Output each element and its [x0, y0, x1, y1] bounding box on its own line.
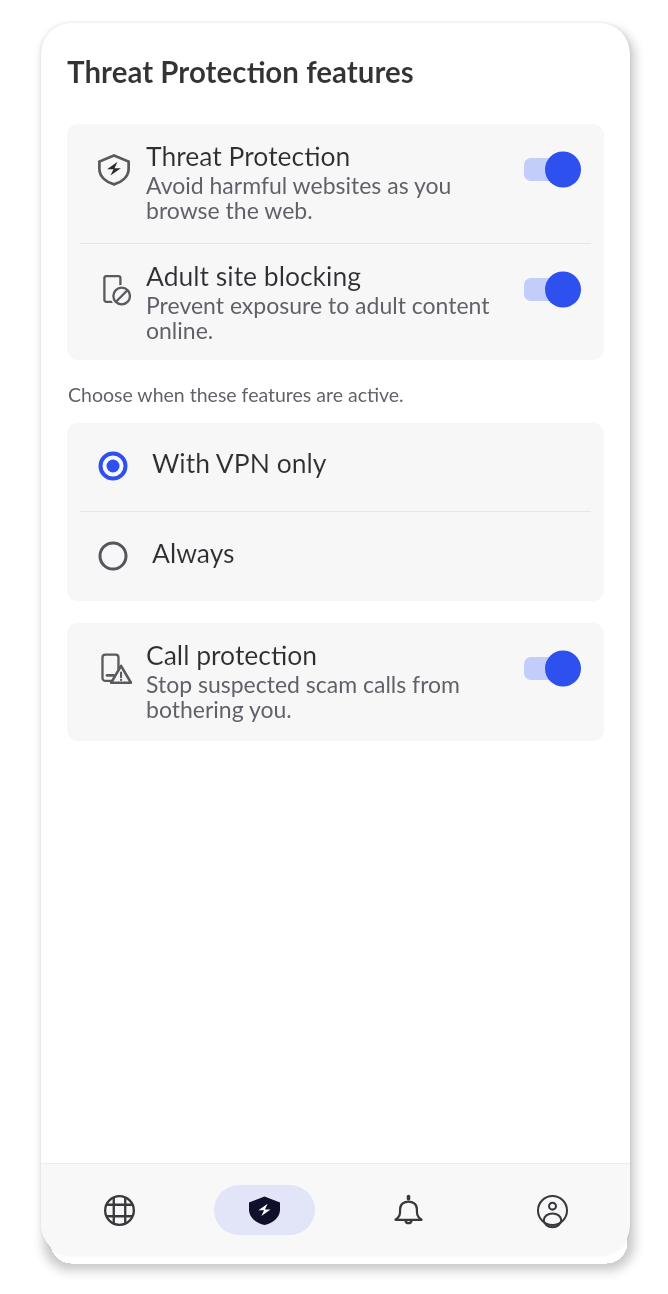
- staticText: Stop suspected scam calls from bothering…: [146, 670, 461, 723]
- staticText: Threat Protection: [146, 140, 351, 172]
- staticText: Prevent exposure to adult content online…: [146, 291, 490, 344]
- button[interactable]: Notifications: [336, 1164, 480, 1255]
- button[interactable]: With VPN only: [67, 423, 604, 511]
- staticText: Adult site blocking: [146, 260, 362, 292]
- staticText: Avoid harmful websites as you browse the…: [146, 171, 452, 224]
- button[interactable]: Account: [480, 1164, 624, 1255]
- button[interactable]: Adult site blocking: [67, 244, 604, 360]
- button[interactable]: Protection: [192, 1164, 336, 1255]
- button[interactable]: Browser: [47, 1164, 192, 1255]
- staticText: Threat Protection features: [67, 54, 414, 89]
- staticText: With VPN only: [152, 447, 327, 479]
- staticText: Call protection: [146, 639, 318, 671]
- staticText: Always: [152, 537, 235, 569]
- staticText: Choose when these features are active.: [68, 383, 404, 406]
- button[interactable]: Call protection: [67, 623, 604, 741]
- button[interactable]: Threat Protection: [67, 124, 604, 243]
- button[interactable]: Always: [67, 512, 604, 601]
